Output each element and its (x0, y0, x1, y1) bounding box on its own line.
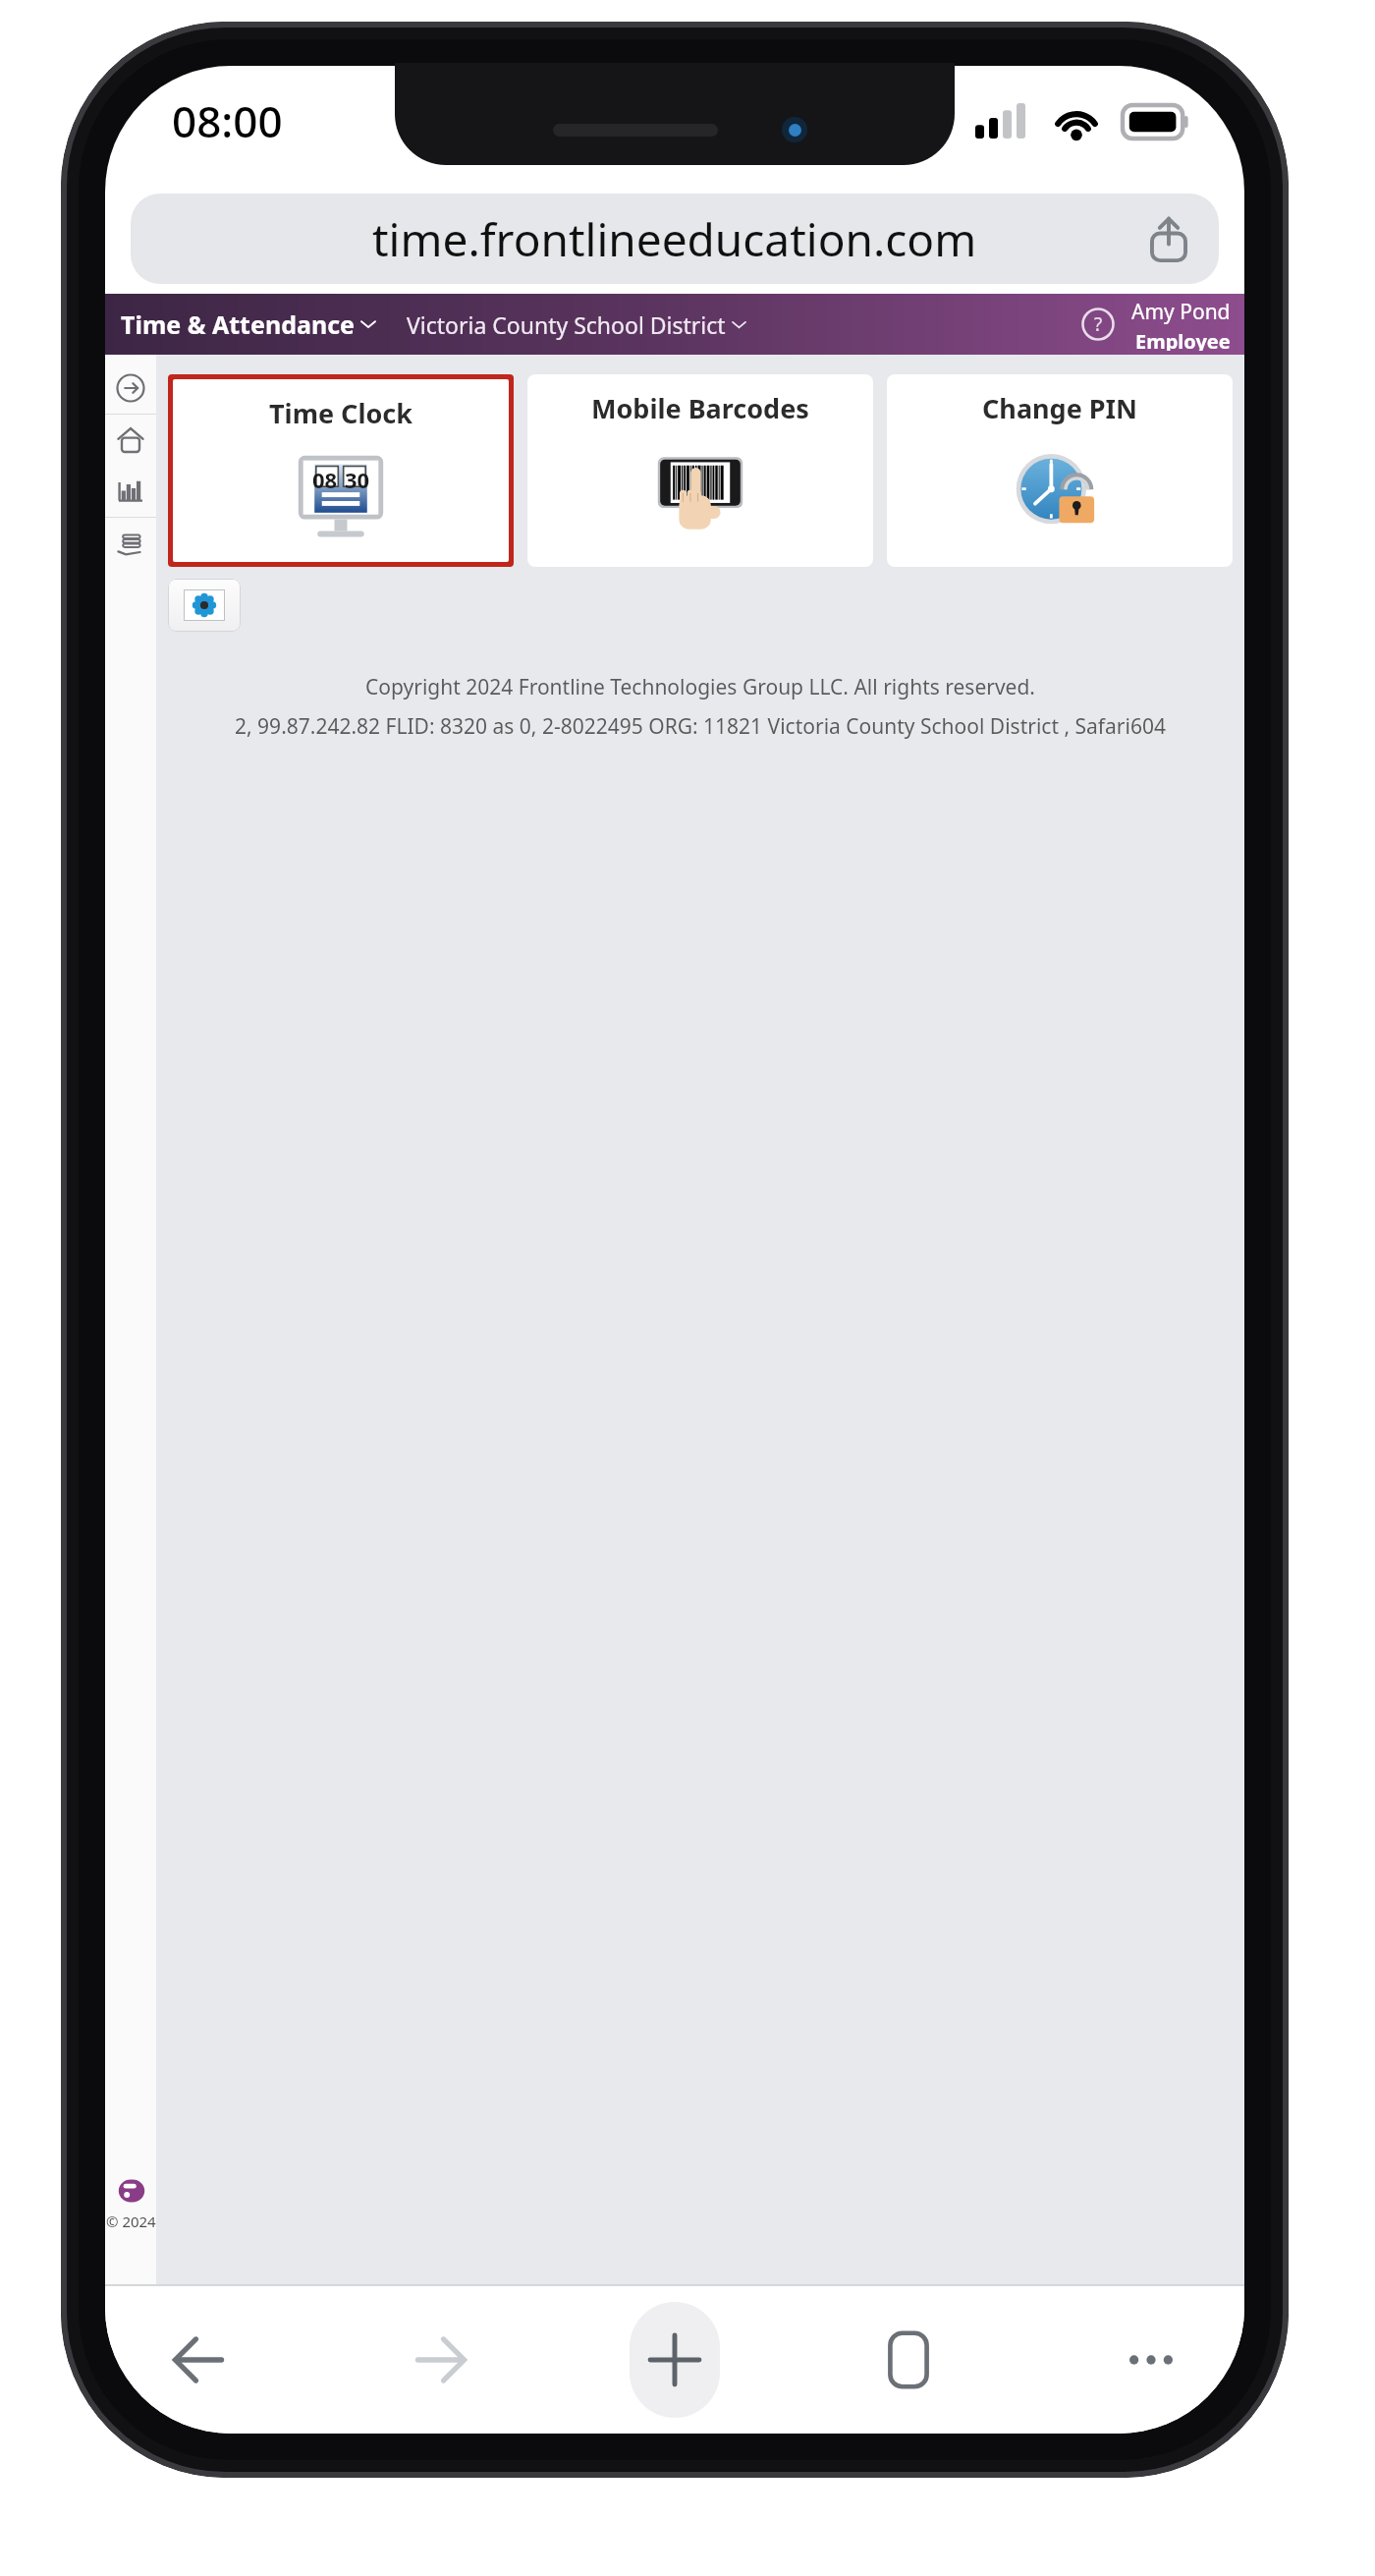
staticText: © 2024 (106, 2212, 156, 2231)
button[interactable]: Victoria County School District (403, 304, 749, 346)
button[interactable]: Share (1136, 206, 1201, 271)
staticText: Time & Attendance (121, 308, 355, 341)
button[interactable]: Time Clock (173, 379, 509, 562)
button[interactable]: Amy Pond (1127, 294, 1235, 355)
button[interactable]: Help (1074, 301, 1122, 348)
staticText: ? (1094, 311, 1103, 337)
button[interactable]: Reports (105, 466, 156, 517)
button[interactable]: More (1097, 2302, 1205, 2418)
button[interactable]: Payroll (105, 518, 156, 569)
button[interactable]: Settings (168, 579, 241, 632)
button[interactable]: Forward (387, 2302, 495, 2418)
button[interactable]: Tabs (854, 2302, 962, 2418)
button[interactable]: Mobile Barcodes (527, 374, 873, 567)
staticText: 08:00 (172, 91, 283, 150)
staticText: Victoria County School District (407, 309, 726, 340)
staticText: Amy Pond (1131, 298, 1231, 326)
button[interactable]: Back (144, 2302, 252, 2418)
staticText: Mobile Barcodes (591, 390, 809, 426)
button[interactable]: time.frontlineeducation.com (131, 194, 1219, 284)
staticText: 08 (312, 465, 338, 494)
staticText: time.frontlineeducation.com (372, 208, 977, 270)
button[interactable]: Collapse menu (105, 363, 156, 414)
button[interactable]: New tab (630, 2302, 720, 2418)
staticText: Change PIN (982, 390, 1138, 426)
staticText: 2, 99.87.242.82 FLID: 8320 as 0, 2-80224… (235, 712, 1166, 741)
button[interactable]: Time & Attendance (117, 302, 379, 347)
button[interactable]: Home (105, 415, 156, 466)
staticText: 30 (345, 465, 370, 494)
staticText: Employee (1135, 328, 1231, 351)
staticText: Time Clock (269, 395, 413, 431)
staticText: Copyright 2024 Frontline Technologies Gr… (365, 673, 1035, 701)
button[interactable]: Change PIN (887, 374, 1233, 567)
